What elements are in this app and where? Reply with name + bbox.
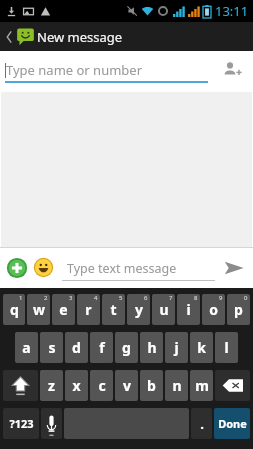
button[interactable]: Shift	[3, 370, 38, 401]
staticText: 4	[94, 294, 98, 302]
button[interactable]: Insert emoticon	[33, 257, 54, 278]
staticText: a	[22, 338, 31, 357]
staticText: f	[99, 338, 105, 357]
button[interactable]: i	[177, 294, 200, 325]
button[interactable]: .	[191, 408, 212, 439]
staticText: u	[159, 300, 169, 319]
staticText: 2	[44, 294, 48, 302]
button[interactable]: Type text message	[62, 255, 215, 281]
staticText: k	[197, 338, 206, 357]
staticText: ?123	[9, 416, 34, 431]
staticText: c	[98, 376, 106, 395]
button[interactable]: k	[190, 332, 213, 363]
staticText: o	[209, 300, 218, 319]
button[interactable]: Add recipient from contacts	[219, 57, 245, 83]
button[interactable]: v	[115, 370, 138, 401]
staticText: 6	[144, 294, 148, 302]
staticText: s	[48, 338, 56, 357]
button[interactable]: q	[3, 294, 25, 325]
button[interactable]: m	[190, 370, 213, 401]
staticText: y	[135, 300, 143, 319]
staticText: x	[72, 376, 81, 395]
button[interactable]: c	[90, 370, 113, 401]
button[interactable]: l	[215, 332, 238, 363]
button[interactable]: h	[140, 332, 163, 363]
button[interactable]: y	[127, 294, 150, 325]
button[interactable]: o	[202, 294, 225, 325]
button[interactable]: Send	[221, 255, 247, 281]
button[interactable]: b	[140, 370, 163, 401]
staticText: 1	[19, 294, 23, 302]
staticText: 3	[69, 294, 73, 302]
staticText: h	[147, 338, 157, 357]
staticText: m	[195, 376, 209, 395]
button[interactable]: j	[165, 332, 188, 363]
staticText: Done	[218, 416, 247, 431]
button[interactable]: p	[227, 294, 250, 325]
staticText: q	[10, 300, 19, 319]
button[interactable]: n	[165, 370, 188, 401]
staticText: .	[200, 415, 204, 433]
button[interactable]: a	[15, 332, 38, 363]
staticText: 13:11	[215, 2, 249, 20]
button[interactable]: Navigate up	[3, 27, 37, 46]
button[interactable]: u	[152, 294, 175, 325]
staticText: w	[33, 300, 45, 319]
button[interactable]: Voice input	[41, 408, 62, 439]
button[interactable]: Done	[214, 408, 250, 439]
staticText: r	[85, 300, 92, 319]
button[interactable]: d	[65, 332, 88, 363]
staticText: l	[224, 338, 229, 357]
button[interactable]: s	[40, 332, 63, 363]
staticText: t	[110, 300, 117, 319]
staticText: e	[59, 300, 68, 319]
staticText: j	[174, 338, 179, 357]
staticText: 8	[194, 294, 198, 302]
button[interactable]: g	[115, 332, 138, 363]
staticText: n	[172, 376, 182, 395]
button[interactable]: f	[90, 332, 113, 363]
staticText: New message	[37, 28, 123, 46]
staticText: b	[147, 376, 156, 395]
staticText: 7	[169, 294, 173, 302]
button[interactable]: w	[27, 294, 50, 325]
button[interactable]: r	[77, 294, 100, 325]
button[interactable]: z	[40, 370, 63, 401]
staticText: 9	[219, 294, 223, 302]
button[interactable]: ?123	[3, 408, 39, 439]
button[interactable]: Type name or number	[5, 57, 208, 83]
staticText: g	[122, 338, 131, 357]
staticText: d	[72, 338, 81, 357]
staticText: Type name or number	[6, 61, 143, 79]
button[interactable]: Attach	[6, 257, 28, 279]
button[interactable]: t	[102, 294, 125, 325]
button[interactable]: Delete	[215, 370, 250, 401]
staticText: p	[234, 300, 243, 319]
staticText: z	[48, 376, 55, 395]
staticText: i	[186, 300, 191, 319]
staticText: 5	[119, 294, 123, 302]
button[interactable]: e	[52, 294, 75, 325]
button[interactable]: x	[65, 370, 88, 401]
staticText: Type text message	[67, 260, 177, 277]
staticText: v	[123, 376, 131, 395]
staticText: 0	[244, 294, 248, 302]
